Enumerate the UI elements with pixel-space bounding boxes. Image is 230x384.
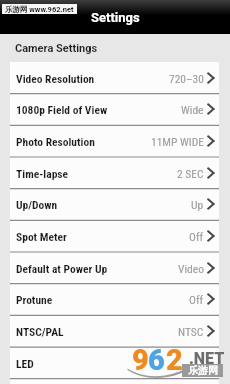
- staticText: 1080p Field of View: [16, 103, 108, 116]
- staticText: 9: [132, 343, 149, 376]
- staticText: Settings: [91, 10, 140, 25]
- button[interactable]: Protune: [10, 283, 219, 315]
- staticText: Spot Meter: [16, 230, 67, 243]
- button[interactable]: Time-lapse: [10, 157, 219, 189]
- staticText: Video Resolution: [16, 72, 95, 85]
- staticText: 乐游网 www.962.net: [5, 5, 74, 14]
- staticText: NTSC: [178, 325, 204, 338]
- button[interactable]: Spot Meter: [10, 220, 219, 252]
- staticText: 11MP WIDE: [151, 135, 204, 148]
- staticText: Time-lapse: [16, 167, 69, 180]
- staticText: Photo Resolution: [16, 135, 95, 148]
- button[interactable]: Up/Down: [10, 188, 219, 220]
- staticText: Default at Power Up: [16, 262, 108, 275]
- staticText: 2 SEC: [177, 167, 204, 180]
- staticText: Wide: [181, 103, 204, 116]
- staticText: 2: [166, 343, 183, 376]
- button[interactable]: NTSC/PAL: [10, 315, 219, 347]
- button[interactable]: Video Resolution: [10, 62, 219, 94]
- staticText: Up: [191, 198, 204, 211]
- staticText: 6: [148, 343, 165, 376]
- staticText: Video: [178, 262, 204, 275]
- button[interactable]: Settings: [0, 0, 230, 34]
- staticText: LED: [16, 357, 34, 370]
- button[interactable]: Default at Power Up: [10, 252, 219, 284]
- staticText: .NET: [189, 349, 225, 368]
- staticText: NTSC/PAL: [16, 325, 64, 338]
- staticText: Off: [189, 230, 204, 243]
- staticText: 720–30: [169, 72, 204, 85]
- staticText: Protune: [16, 293, 53, 306]
- staticText: 乐游网: [188, 364, 218, 377]
- staticText: Up/Down: [16, 198, 58, 211]
- button[interactable]: 1080p Field of View: [10, 93, 219, 125]
- button[interactable]: Photo Resolution: [10, 125, 219, 157]
- staticText: Camera Settings: [15, 42, 98, 55]
- staticText: Off: [189, 293, 204, 306]
- button[interactable]: LED: [10, 347, 219, 379]
